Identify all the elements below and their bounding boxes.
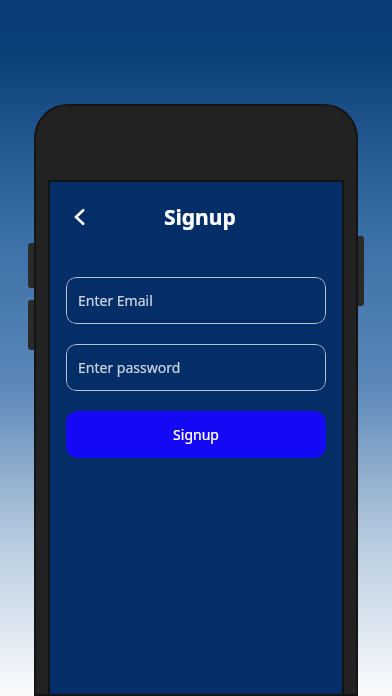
staticText: Signup — [173, 425, 219, 444]
button[interactable]: Enter Email — [66, 277, 326, 324]
button[interactable]: Enter password — [66, 344, 326, 391]
staticText: Enter password — [78, 358, 181, 377]
staticText: Enter Email — [78, 291, 153, 310]
button[interactable]: Back — [58, 195, 102, 239]
button[interactable]: Signup — [66, 411, 326, 458]
staticText: Signup — [164, 203, 236, 232]
